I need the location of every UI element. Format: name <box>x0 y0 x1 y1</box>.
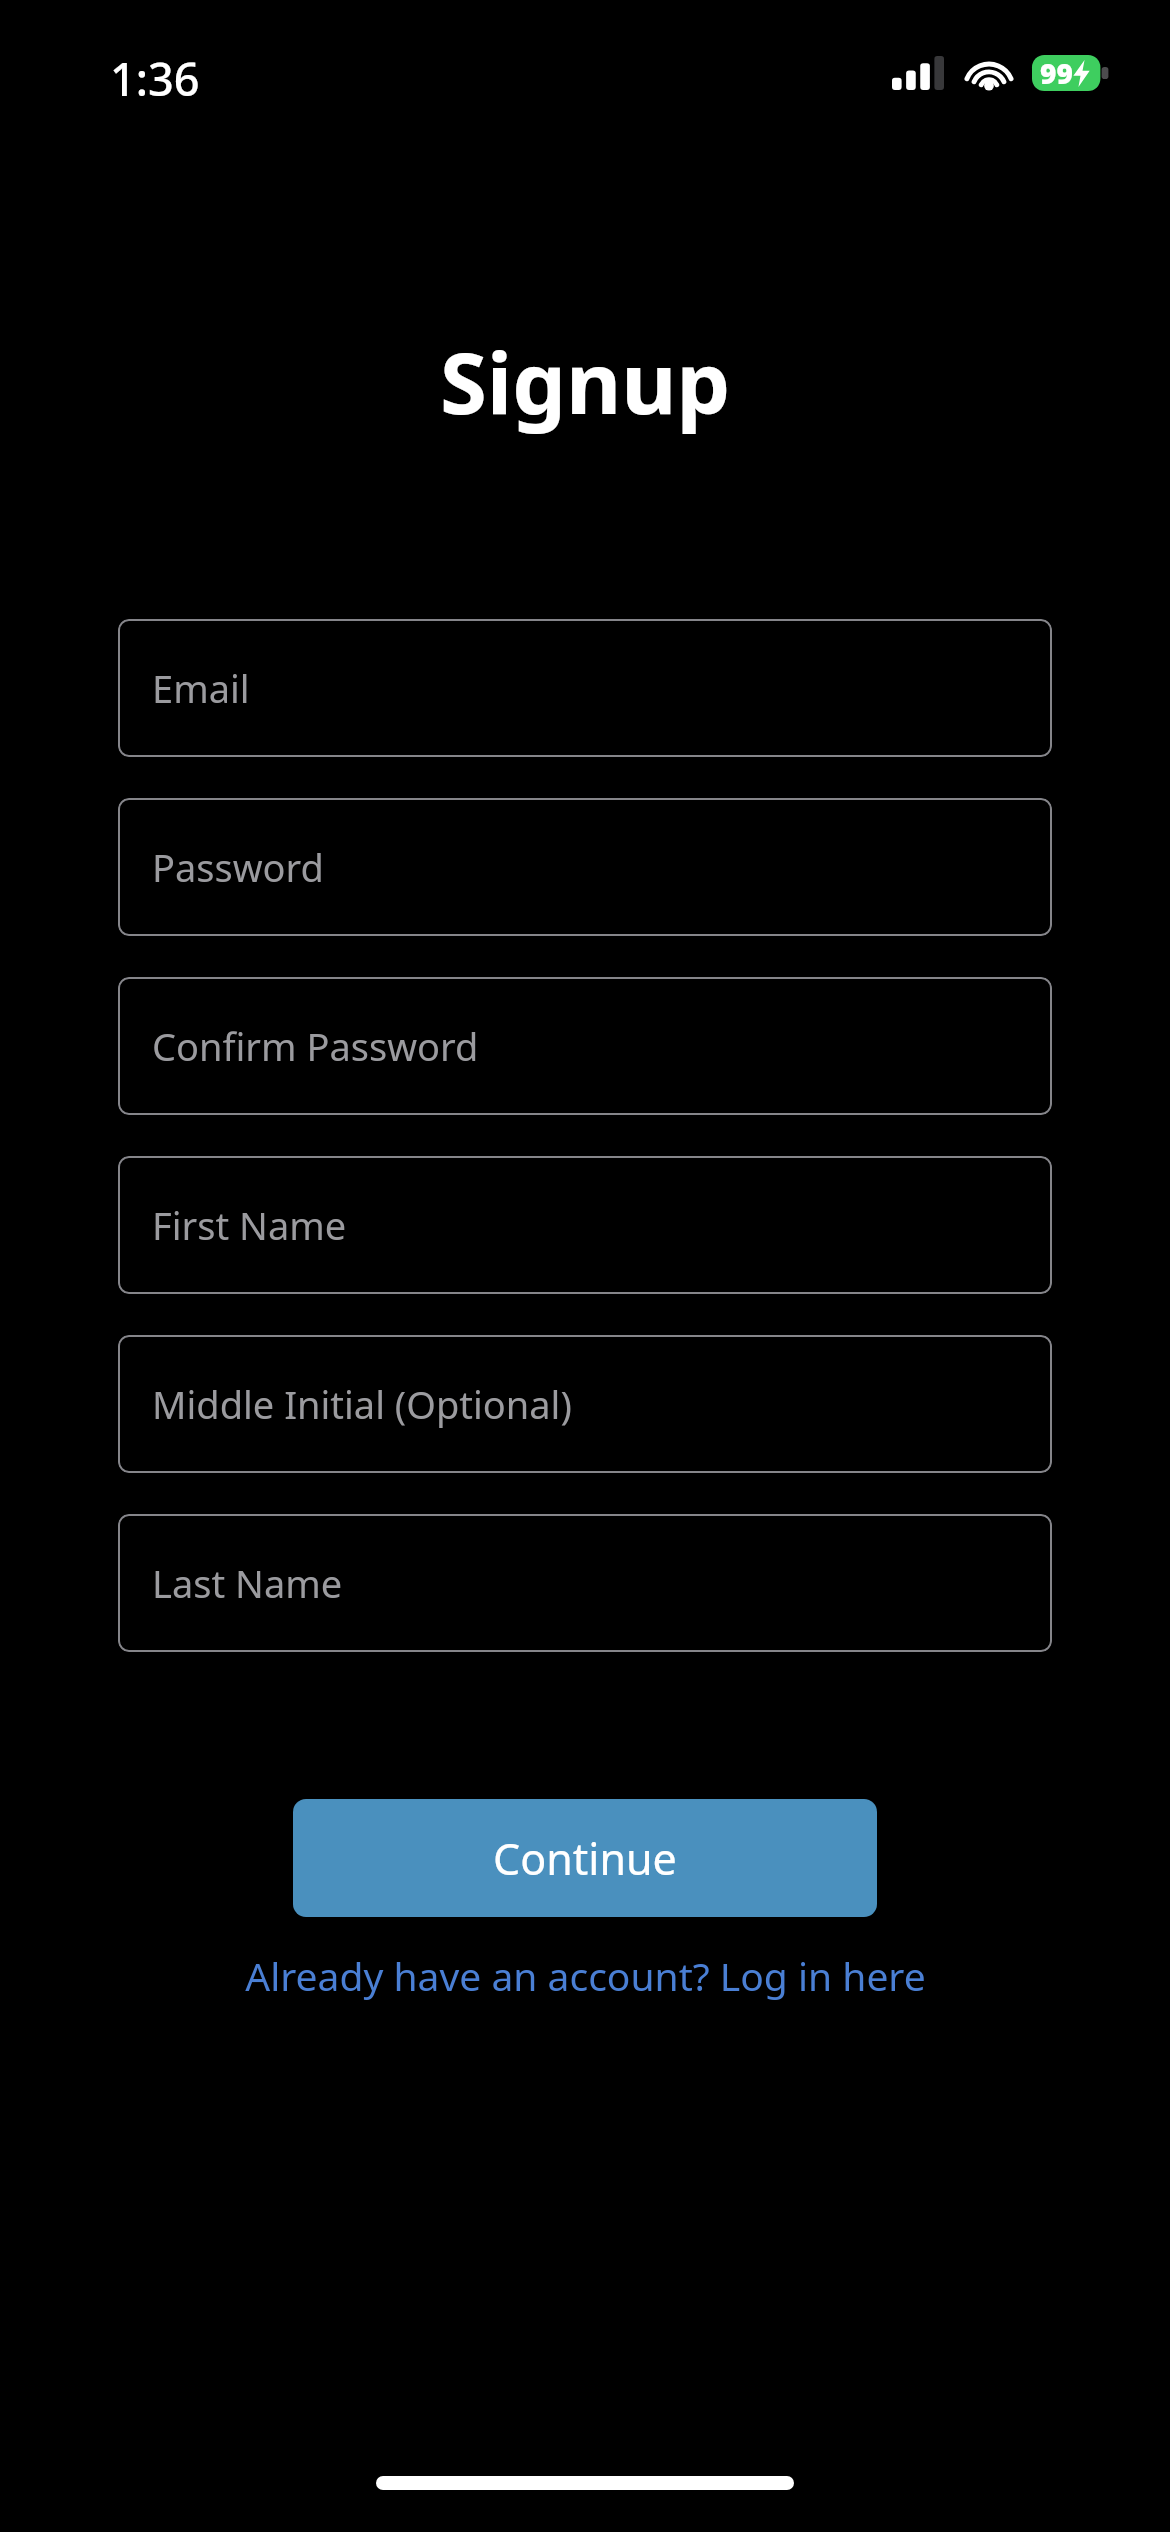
staticText: Continue <box>493 1829 677 1888</box>
staticText: Last Name <box>152 1557 343 1609</box>
button[interactable]: First Name <box>118 1156 1052 1294</box>
staticText: 1:36 <box>110 48 200 109</box>
other: Home indicator <box>376 2476 794 2490</box>
staticText: 99 <box>1040 54 1073 92</box>
staticText: First Name <box>152 1199 347 1251</box>
staticText: Already have an account? Log in here <box>245 1949 926 2002</box>
staticText: Signup <box>0 323 1170 439</box>
button[interactable]: Continue <box>293 1799 877 1917</box>
button[interactable]: Last Name <box>118 1514 1052 1652</box>
button[interactable]: Email <box>118 619 1052 757</box>
button[interactable]: Middle Initial (Optional) <box>118 1335 1052 1473</box>
button[interactable]: Already have an account? Log in here <box>0 1939 1170 2012</box>
button[interactable]: Password <box>118 798 1052 936</box>
staticText: Confirm Password <box>152 1020 479 1072</box>
staticText: Email <box>152 662 250 714</box>
staticText: Password <box>152 841 324 893</box>
staticText: Middle Initial (Optional) <box>152 1378 572 1430</box>
button[interactable]: Confirm Password <box>118 977 1052 1115</box>
